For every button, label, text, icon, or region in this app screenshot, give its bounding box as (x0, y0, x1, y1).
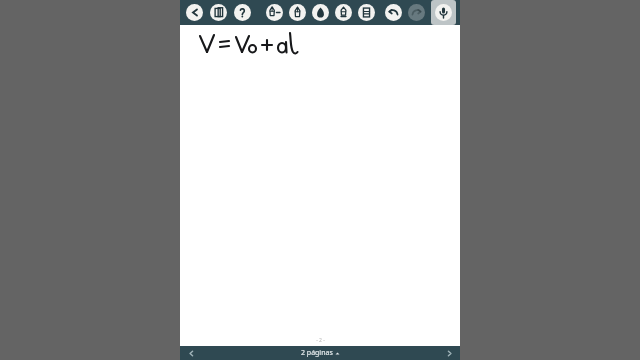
button[interactable]: Help (234, 4, 251, 21)
button[interactable]: Ink colour (312, 4, 329, 21)
button[interactable]: Next page (438, 346, 460, 360)
button[interactable]: Pages (210, 4, 227, 21)
button[interactable]: Eraser (358, 4, 375, 21)
button[interactable]: Redo (408, 4, 425, 21)
button[interactable]: Back (186, 4, 203, 21)
button[interactable]: Previous page (180, 346, 202, 360)
button[interactable]: Pen (289, 4, 306, 21)
button[interactable]: Undo (385, 4, 402, 21)
staticText: - 2 - (316, 337, 325, 344)
button[interactable]: Highlighter (335, 4, 352, 21)
button[interactable]: 2 páginas (202, 346, 438, 360)
button[interactable]: Voice note (431, 0, 456, 25)
staticText: 2 páginas (301, 348, 333, 358)
button[interactable]: Pen with eraser (266, 4, 283, 21)
